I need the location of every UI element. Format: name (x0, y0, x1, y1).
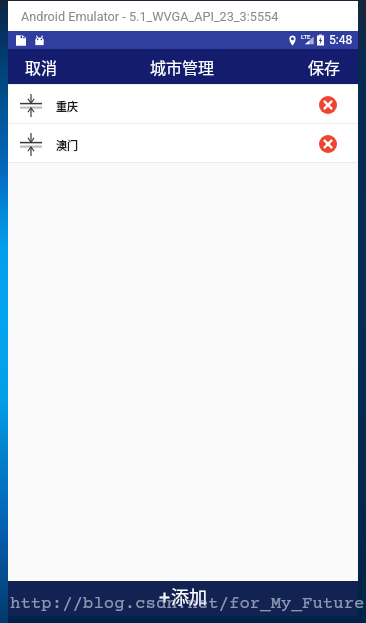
staticText: LTE (301, 33, 311, 40)
staticText: 添加 (171, 583, 207, 609)
other: Reorder (20, 133, 42, 156)
button[interactable]: 取消 (8, 49, 75, 84)
staticText: Android Emulator - 5.1_WVGA_API_23_3:555… (21, 9, 279, 24)
button[interactable]: Delete (311, 127, 345, 161)
staticText: 重庆 (56, 98, 78, 114)
staticText: 澳门 (56, 137, 78, 153)
button[interactable]: Reorder (8, 85, 358, 123)
staticText: 取消 (25, 55, 58, 78)
other: Reorder (20, 94, 42, 117)
button[interactable]: Reorder (8, 124, 358, 162)
button[interactable]: 保存 (291, 49, 358, 84)
staticText: 5:48 (329, 33, 353, 47)
staticText: 城市管理 (150, 55, 215, 78)
staticText: 保存 (308, 55, 341, 78)
staticText: http://blog.csdn.net/for_My_Future (10, 594, 365, 614)
button[interactable]: 添加 (8, 581, 358, 616)
button[interactable]: Delete (311, 88, 345, 122)
